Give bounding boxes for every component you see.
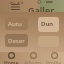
button[interactable]: Autumn: [5, 17, 28, 30]
staticText: 9:41: [10, 0, 24, 4]
staticText: Dunes: [41, 20, 56, 29]
button[interactable]: Desert: [5, 34, 28, 47]
staticText: Home: [4, 60, 19, 64]
staticText: Albums: [24, 60, 42, 64]
button[interactable]: Menu: [8, 4, 22, 12]
button[interactable]: Dunes: [38, 17, 59, 32]
staticText: Autumn: [8, 20, 25, 27]
staticText: Profile: [46, 60, 62, 64]
staticText: Desert: [8, 37, 25, 44]
button[interactable]: Profile: [43, 52, 64, 64]
staticText: Gallery: [28, 4, 56, 12]
button[interactable]: Albums: [22, 52, 43, 64]
button[interactable]: Home: [0, 52, 22, 64]
